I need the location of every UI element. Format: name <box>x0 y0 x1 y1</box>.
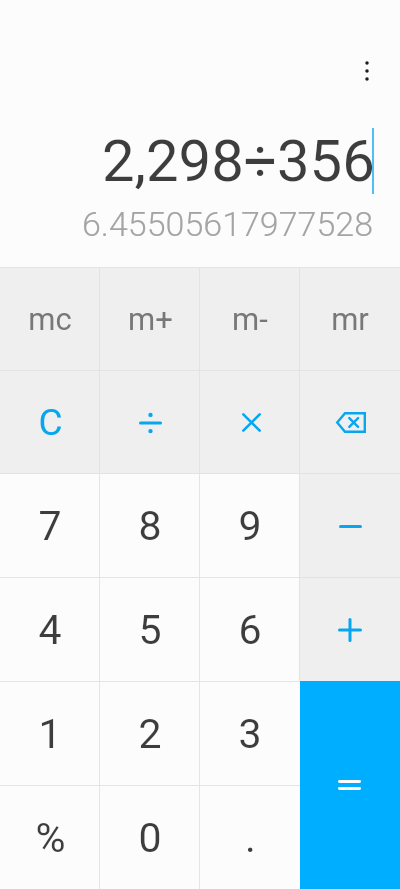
button[interactable]: 2 <box>100 681 200 785</box>
button[interactable]: More options <box>349 53 385 89</box>
button[interactable]: C <box>0 370 100 473</box>
staticText: 8 <box>138 502 162 550</box>
staticText: 0 <box>138 814 162 862</box>
staticText: 6.45505617977528 <box>82 204 374 244</box>
button[interactable]: mc <box>0 267 100 370</box>
staticText: 6 <box>238 606 262 654</box>
staticText: 2 <box>138 710 162 758</box>
staticText: mc <box>28 301 72 337</box>
staticText: 2,298÷356 <box>102 127 375 195</box>
staticText: . <box>245 814 256 862</box>
staticText: m+ <box>128 301 173 337</box>
staticText: 3 <box>238 710 262 758</box>
button[interactable]: Multiply <box>200 370 300 473</box>
button[interactable]: mr <box>300 267 400 370</box>
staticText: % <box>35 814 66 862</box>
button[interactable]: . <box>200 785 300 889</box>
staticText: 7 <box>38 502 62 550</box>
button[interactable]: m+ <box>100 267 200 370</box>
button[interactable]: Backspace <box>300 370 400 473</box>
button[interactable]: % <box>0 785 100 889</box>
button[interactable]: 1 <box>0 681 100 785</box>
staticText: 1 <box>38 710 62 758</box>
staticText: m- <box>232 301 268 337</box>
staticText: mr <box>331 301 369 337</box>
button[interactable]: 7 <box>0 473 100 577</box>
staticText: 9 <box>238 502 262 550</box>
staticText: C <box>38 401 63 444</box>
staticText: 4 <box>38 606 62 654</box>
button[interactable]: 8 <box>100 473 200 577</box>
button[interactable]: 0 <box>100 785 200 889</box>
button[interactable]: Divide <box>100 370 200 473</box>
button[interactable]: Minus <box>300 473 400 577</box>
button[interactable]: 9 <box>200 473 300 577</box>
button[interactable]: 4 <box>0 577 100 681</box>
button[interactable]: m- <box>200 267 300 370</box>
button[interactable]: Plus <box>300 577 400 681</box>
button[interactable]: 6 <box>200 577 300 681</box>
button[interactable]: 3 <box>200 681 300 785</box>
button[interactable]: Equals <box>300 681 400 889</box>
button[interactable]: 5 <box>100 577 200 681</box>
staticText: 5 <box>138 606 162 654</box>
